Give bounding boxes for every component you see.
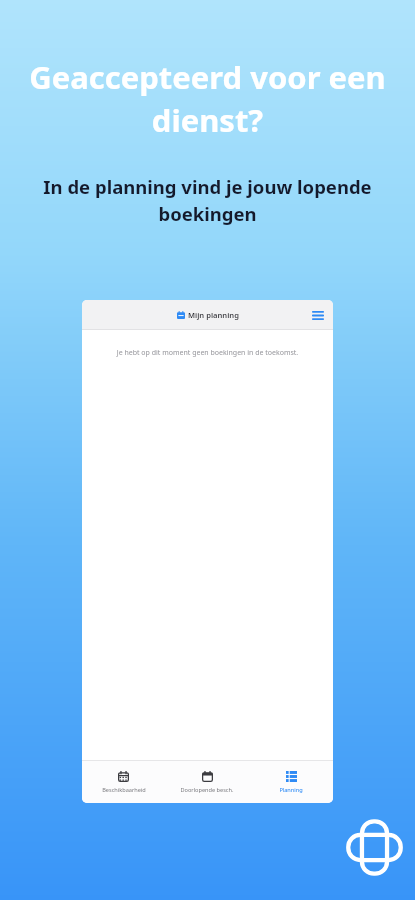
staticText: Je hebt op dit moment geen boekingen in … bbox=[92, 348, 323, 358]
button[interactable]: Doorlopende besch. bbox=[165, 766, 249, 799]
staticText: Beschikbaarheid bbox=[102, 786, 146, 794]
staticText: Geaccepteerd voor een dienst? bbox=[22, 56, 393, 141]
staticText: Doorlopende besch. bbox=[180, 786, 234, 794]
staticText: Planning bbox=[279, 786, 303, 794]
staticText: Mijn planning bbox=[188, 310, 239, 320]
button[interactable]: Planning bbox=[249, 766, 333, 799]
staticText: In de planning vind je jouw lopende boek… bbox=[34, 174, 381, 227]
button[interactable]: App logo bbox=[346, 819, 403, 876]
button[interactable]: Beschikbaarheid bbox=[82, 766, 165, 799]
button[interactable]: Menu bbox=[310, 307, 326, 323]
